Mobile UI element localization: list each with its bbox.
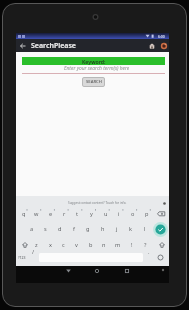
button[interactable]: b — [85, 240, 96, 250]
staticText: q — [22, 210, 26, 218]
staticText: y — [90, 210, 93, 218]
staticText: l — [144, 225, 146, 233]
button[interactable]: l — [139, 224, 150, 234]
staticText: h — [101, 225, 105, 233]
button[interactable]: k — [125, 224, 136, 234]
staticText: i — [118, 210, 120, 218]
button[interactable]: j — [111, 224, 122, 234]
staticText: w — [34, 210, 39, 218]
staticText: o — [131, 210, 135, 218]
button[interactable]: h — [97, 224, 108, 234]
button[interactable]: w — [31, 209, 42, 219]
button[interactable]: g — [82, 224, 93, 234]
button[interactable]: n — [98, 240, 109, 250]
button[interactable]: ?123 — [15, 252, 29, 262]
staticText: ! — [131, 241, 133, 249]
staticText: s — [44, 225, 47, 233]
button[interactable]: SEARCH — [82, 77, 105, 87]
button[interactable]: f — [68, 224, 79, 234]
staticText: 6:00 — [158, 34, 165, 39]
staticText: ?123 — [18, 255, 26, 260]
button[interactable]: d — [54, 224, 65, 234]
staticText: e — [49, 210, 53, 218]
staticText: SEARCH — [86, 79, 102, 85]
button[interactable]: r — [59, 209, 70, 219]
staticText: k — [129, 225, 132, 233]
button[interactable]: c — [58, 240, 69, 250]
button[interactable] — [159, 39, 169, 52]
staticText: g — [86, 225, 90, 233]
button[interactable]: ? — [140, 240, 151, 250]
button[interactable] — [62, 266, 75, 276]
button[interactable] — [91, 266, 103, 276]
staticText: Suggest contact content? Touch for info. — [68, 201, 127, 205]
staticText: p — [145, 210, 149, 218]
staticText: z — [35, 241, 38, 249]
staticText: j — [116, 225, 118, 233]
button[interactable]: p — [141, 209, 152, 219]
button[interactable]: u — [100, 209, 111, 219]
staticText: v — [75, 241, 78, 249]
button[interactable]: q — [18, 209, 29, 219]
staticText: / — [32, 248, 35, 256]
button[interactable]: s — [40, 224, 51, 234]
button[interactable]: m — [112, 240, 123, 250]
staticText: a — [30, 225, 34, 233]
button[interactable]: z — [31, 240, 42, 250]
staticText: b — [89, 241, 93, 249]
button[interactable]: . — [143, 247, 154, 257]
button[interactable]: y — [86, 209, 97, 219]
button[interactable]: / — [28, 247, 39, 257]
staticText: ? — [144, 241, 147, 249]
staticText: u — [104, 210, 108, 218]
staticText: t — [76, 210, 79, 218]
staticText: n — [102, 241, 106, 249]
staticText: c — [62, 241, 65, 249]
button[interactable]: v — [71, 240, 82, 250]
staticText: m — [115, 241, 121, 249]
button[interactable]: x — [45, 240, 56, 250]
staticText: r — [63, 210, 66, 218]
staticText: f — [73, 225, 75, 233]
staticText: d — [58, 225, 62, 233]
button[interactable] — [17, 39, 28, 52]
button[interactable]: i — [113, 209, 124, 219]
button[interactable]: a — [26, 224, 37, 234]
button[interactable] — [146, 39, 157, 52]
button[interactable]: e — [45, 209, 56, 219]
staticText: Keyword: — [82, 58, 106, 65]
staticText: Enter your search term(s) here — [64, 65, 130, 72]
staticText: . — [148, 248, 150, 256]
button[interactable]: Keyword: — [22, 57, 165, 65]
button[interactable]: t — [72, 209, 83, 219]
button[interactable]: ! — [126, 240, 137, 250]
button[interactable]: o — [127, 209, 138, 219]
staticText: SearchPlease — [31, 41, 76, 51]
button[interactable] — [121, 266, 133, 276]
staticText: x — [49, 241, 52, 249]
